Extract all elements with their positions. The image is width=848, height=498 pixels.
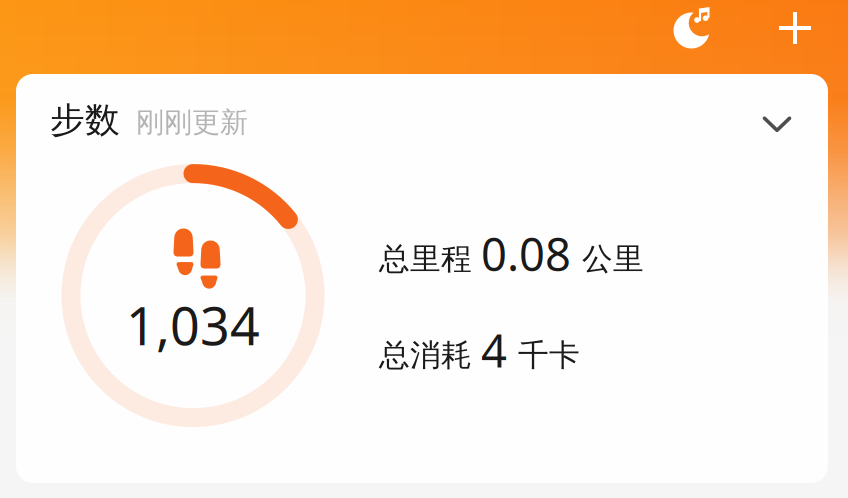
staticText: 总消耗	[379, 336, 472, 374]
button[interactable]: Add	[769, 1, 821, 55]
staticText: 公里	[582, 240, 644, 278]
staticText: 4	[481, 320, 507, 380]
button[interactable]: Collapse	[748, 97, 806, 151]
staticText: 刚刚更新	[136, 105, 248, 140]
staticText: 总里程	[379, 240, 472, 278]
staticText: 0.08	[481, 224, 571, 284]
button[interactable]: Sleep sounds	[661, 1, 723, 55]
staticText: 步数	[50, 99, 120, 142]
staticText: 千卡	[518, 336, 580, 374]
staticText: 1,034	[126, 291, 260, 360]
